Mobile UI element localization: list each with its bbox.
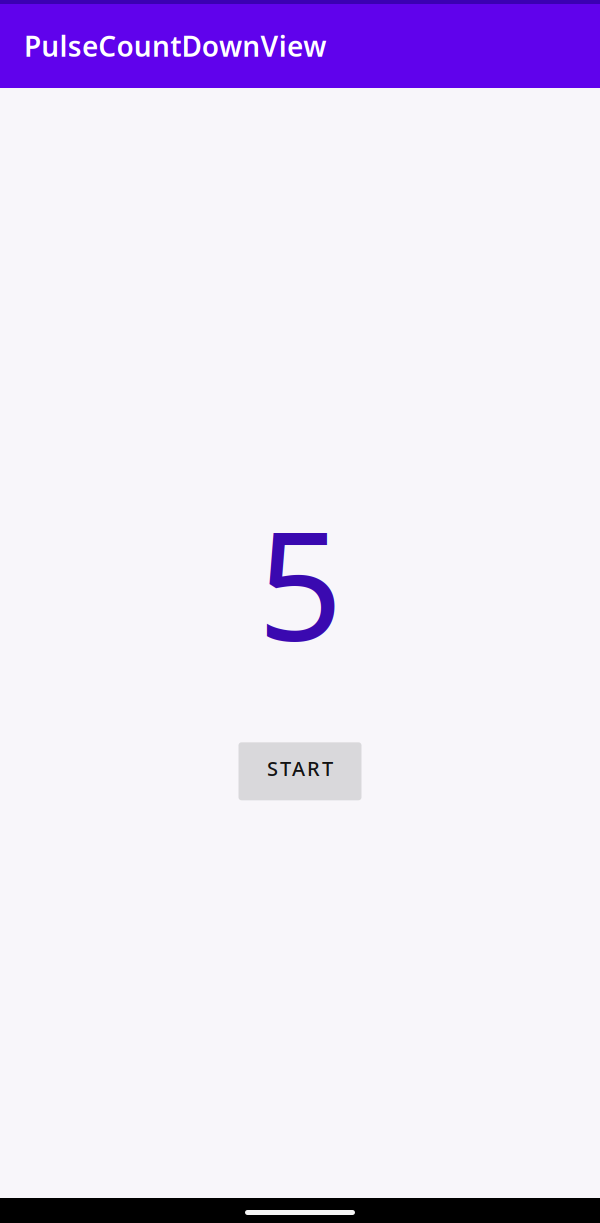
button[interactable]: START [238,742,361,800]
staticText: PulseCountDownView [24,27,326,65]
staticText: START [267,755,333,782]
staticText: 5 [257,484,342,682]
